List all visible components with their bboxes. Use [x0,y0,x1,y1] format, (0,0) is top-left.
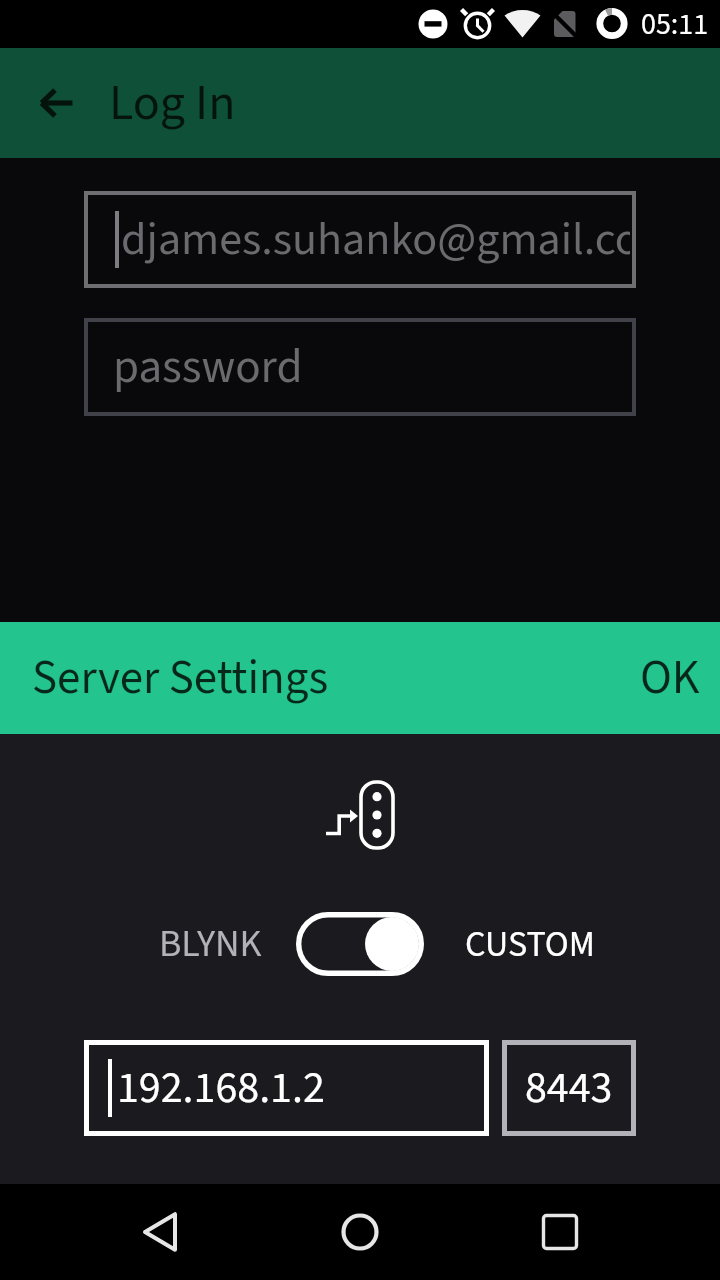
staticText: 05:11 [641,3,709,46]
staticText: password [113,334,303,401]
staticText: CUSTOM [465,919,595,970]
staticText: Log In [109,68,236,139]
button[interactable]: 192.168.1.2 [84,1040,489,1136]
button[interactable]: Home [312,1184,408,1280]
staticText: 8443 [525,1057,613,1120]
staticText: Server Settings [32,645,329,712]
button[interactable]: 8443 [502,1040,636,1136]
button[interactable]: OK [620,630,720,726]
button[interactable]: djames.suhanko@gmail.co [84,191,636,288]
staticText: OK [640,644,700,712]
staticText: djames.suhanko@gmail.co [121,207,630,273]
button[interactable]: Back [8,55,104,151]
button[interactable]: Server type toggle [296,912,424,976]
button[interactable]: Recents [512,1184,608,1280]
staticText: BLYNK [159,917,262,971]
staticText: 192.168.1.2 [117,1057,325,1120]
button[interactable]: password [84,318,636,416]
button[interactable]: Back [112,1184,208,1280]
